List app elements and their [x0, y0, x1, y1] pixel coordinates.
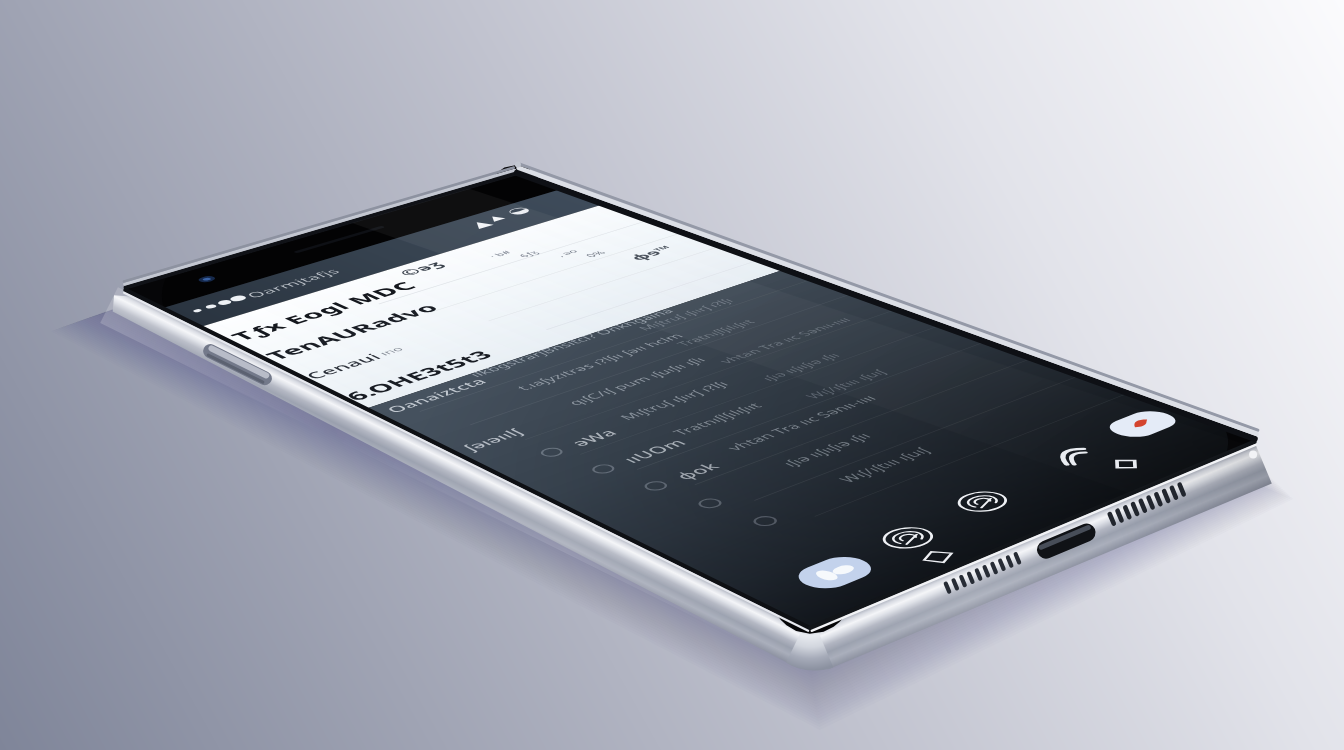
button[interactable]: Smartphone showing an app screen: [0, 0, 1344, 750]
